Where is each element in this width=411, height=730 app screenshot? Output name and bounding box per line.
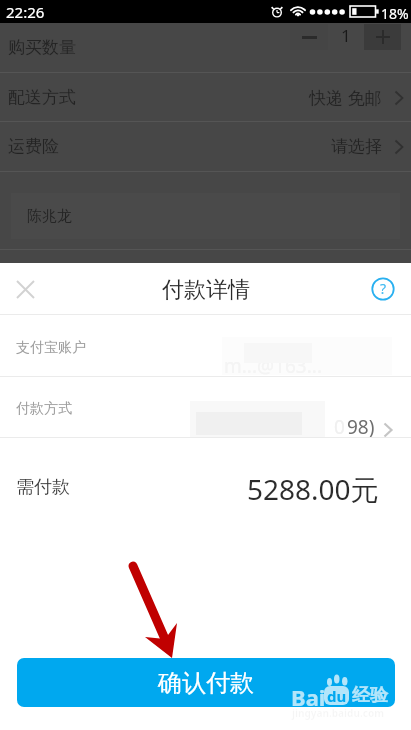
button[interactable]: Increase quantity (364, 24, 401, 50)
button[interactable]: 付款方式 (0, 377, 411, 437)
staticText: 购买数量 (8, 37, 76, 58)
button[interactable]: Help (363, 269, 403, 309)
staticText: 付款详情 (162, 276, 250, 304)
staticText: 经验 (352, 684, 388, 707)
button[interactable]: 运费险 (0, 122, 411, 170)
staticText: 22:26 (6, 2, 45, 22)
staticText: 1 (341, 24, 351, 47)
staticText: jingyan.baidu.com (292, 706, 384, 720)
staticText: 付款方式 (16, 400, 72, 418)
staticText: 需付款 (16, 476, 70, 499)
button[interactable]: 配送方式 (0, 73, 411, 121)
button[interactable]: 确认付款 (17, 658, 395, 707)
staticText: 请选择 (331, 136, 382, 157)
staticText: 配送方式 (8, 87, 76, 108)
staticText: 运费险 (8, 136, 59, 157)
button[interactable]: Close (5, 269, 45, 309)
staticText: 98) (347, 414, 375, 440)
button[interactable]: 陈兆龙 (11, 193, 400, 239)
button[interactable]: Decrease quantity (290, 24, 328, 50)
staticText: Bai (291, 682, 326, 712)
staticText: m...@163... (224, 353, 323, 379)
staticText: 支付宝账户 (16, 339, 86, 357)
button[interactable]: 支付宝账户 (0, 315, 411, 376)
staticText: 快递 免邮 (309, 86, 382, 109)
staticText: 18% (381, 4, 409, 23)
staticText: 陈兆龙 (27, 207, 72, 226)
staticText: 0 (334, 414, 345, 440)
staticText: 确认付款 (158, 668, 254, 698)
staticText: 5288.00元 (247, 470, 379, 508)
staticText: ? (380, 279, 387, 298)
staticText: du (327, 686, 347, 705)
